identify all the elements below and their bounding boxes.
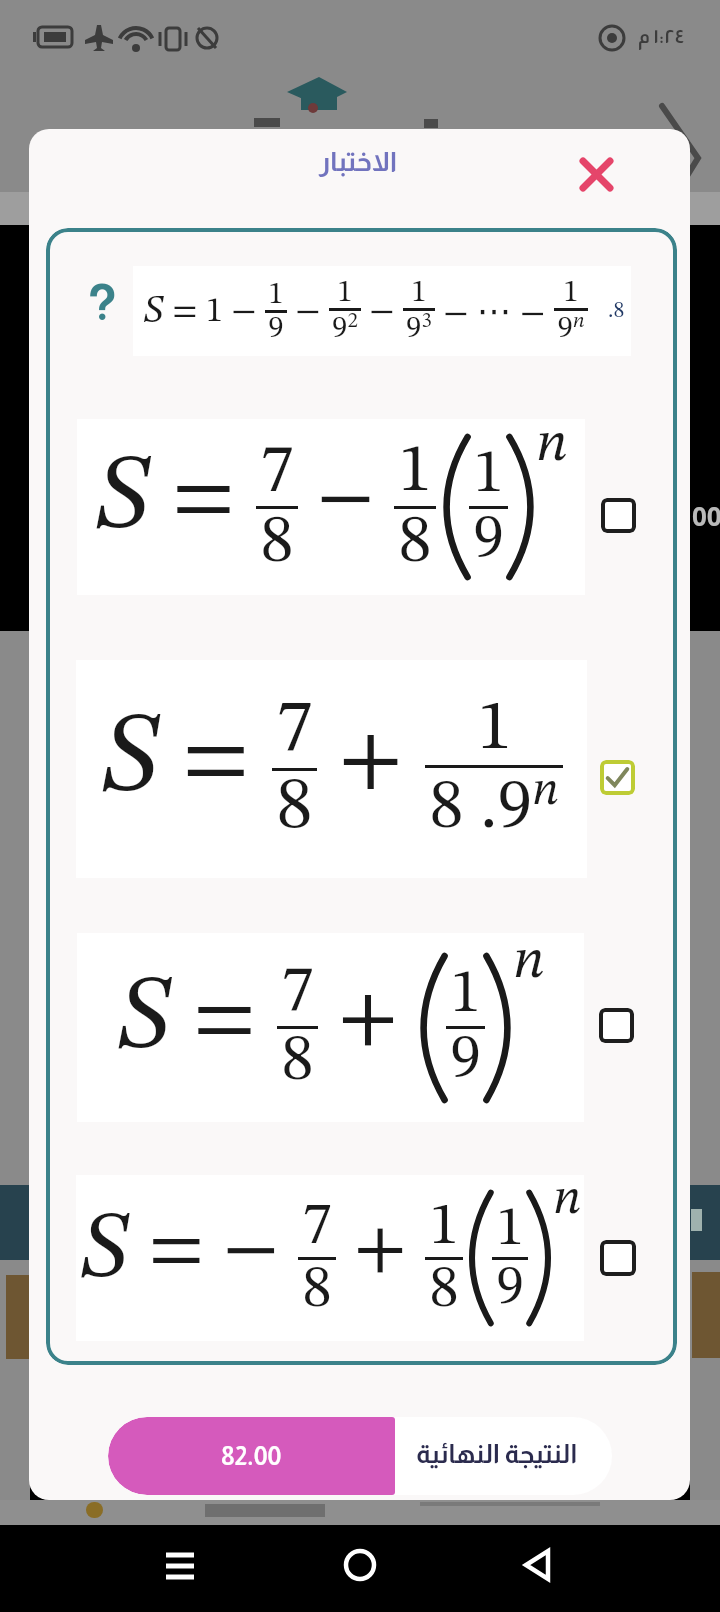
staticText: 7 <box>302 1197 332 1257</box>
staticText: = − <box>130 1212 298 1290</box>
staticText: − ⋯ − <box>435 291 554 332</box>
staticText: S <box>143 292 164 331</box>
button[interactable]: S <box>76 660 587 878</box>
staticText: = 1 − <box>164 294 265 329</box>
button[interactable]: 82.00 <box>108 1417 612 1495</box>
button[interactable] <box>600 1240 636 1276</box>
button[interactable] <box>156 1549 204 1589</box>
staticText: 8 <box>398 509 432 577</box>
staticText: 9 <box>496 1260 524 1316</box>
staticText: 8 <box>276 771 313 845</box>
button[interactable]: S <box>77 419 585 595</box>
staticText: − <box>361 294 403 329</box>
staticText: 7 <box>276 694 313 768</box>
staticText: 1 <box>477 695 512 765</box>
staticText: + <box>336 1214 425 1288</box>
staticText: 1 <box>473 444 504 506</box>
button[interactable] <box>599 1008 634 1043</box>
staticText: − <box>298 459 394 539</box>
staticText: الاختبار <box>319 147 398 177</box>
staticText: 8 <box>302 1260 332 1320</box>
staticText: n <box>513 934 545 990</box>
staticText: 8 <box>429 1260 459 1320</box>
staticText: 7 <box>260 438 294 506</box>
staticText: + <box>317 716 425 806</box>
staticText: .8 <box>608 300 625 322</box>
staticText: S <box>100 705 160 817</box>
staticText: 8 <box>260 509 294 577</box>
staticText: = <box>160 714 272 808</box>
staticText: 92 <box>332 311 358 345</box>
staticText: 1 <box>496 1201 524 1257</box>
button[interactable] <box>573 151 621 199</box>
staticText: n <box>553 1175 582 1225</box>
staticText: S <box>94 446 151 552</box>
staticText: = <box>172 976 277 1064</box>
button[interactable]: S <box>76 1175 584 1341</box>
staticText: 7 <box>281 960 314 1026</box>
staticText: 93 <box>406 311 432 345</box>
staticText: 9n <box>557 311 585 345</box>
staticText: 00 <box>692 498 720 533</box>
staticText: ? <box>87 275 117 331</box>
staticText: 1 <box>268 279 284 310</box>
staticText: + <box>318 978 418 1062</box>
staticText: 1 <box>429 1197 459 1257</box>
staticText: 1 <box>411 277 427 308</box>
staticText: 1 <box>563 277 579 308</box>
staticText: 8 <box>281 1029 314 1095</box>
staticText: S <box>79 1204 130 1298</box>
staticText: ١:٢٤ م <box>638 26 685 47</box>
staticText: 8 .9n <box>429 768 559 844</box>
staticText: 9 <box>450 1029 481 1091</box>
button[interactable] <box>600 760 635 795</box>
staticText: 1 <box>337 277 353 308</box>
staticText: 1 <box>398 438 432 506</box>
staticText: n <box>536 417 568 473</box>
staticText: 9 <box>473 509 504 571</box>
staticText: النتيجة النهائية <box>416 1439 578 1468</box>
staticText: 9 <box>268 313 284 344</box>
staticText: S <box>116 968 172 1072</box>
button[interactable] <box>601 498 636 533</box>
staticText: = <box>151 455 256 543</box>
staticText: 82.00 <box>221 1442 282 1470</box>
button[interactable]: S <box>77 933 584 1122</box>
button[interactable] <box>516 1549 564 1589</box>
staticText: 1 <box>450 964 481 1026</box>
staticText: − <box>287 294 329 329</box>
button[interactable] <box>336 1549 384 1589</box>
